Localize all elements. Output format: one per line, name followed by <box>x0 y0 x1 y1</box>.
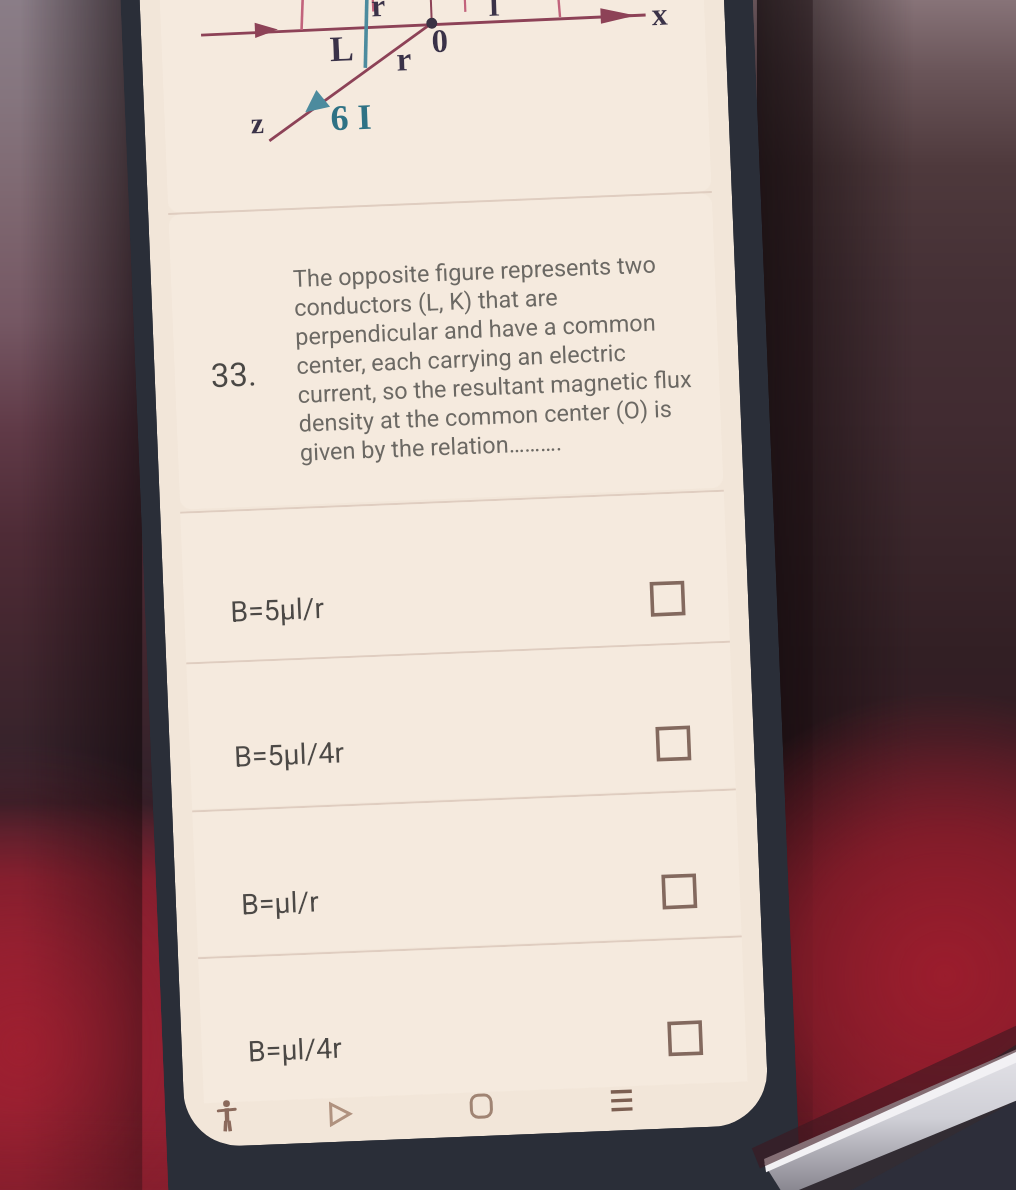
button[interactable]: B=μl/4r <box>198 937 747 1103</box>
staticText: r <box>370 0 387 23</box>
staticText: B=5μl/4r <box>233 736 345 774</box>
button[interactable]: Home <box>457 1082 505 1130</box>
button[interactable]: Back <box>316 1090 363 1138</box>
staticText: B=μl/4r <box>247 1032 342 1068</box>
staticText: L <box>329 28 355 69</box>
button[interactable]: L <box>155 0 712 213</box>
staticText: r <box>395 40 413 79</box>
staticText: The opposite figure represents two condu… <box>292 249 695 466</box>
staticText: I <box>487 0 501 22</box>
button[interactable]: 33. <box>168 193 724 510</box>
staticText: 0 <box>431 23 449 60</box>
button[interactable]: B=μl/r <box>192 791 742 956</box>
button[interactable]: Accessibility <box>202 1091 250 1139</box>
staticText: B=μl/r <box>240 885 320 921</box>
staticText: B=5μl/r <box>230 592 325 629</box>
staticText: x <box>651 0 668 31</box>
button[interactable]: B=5μl/r <box>180 492 730 663</box>
staticText: z <box>250 106 265 139</box>
staticText: 6 I <box>330 97 373 138</box>
button[interactable]: B=5μl/4r <box>186 643 736 809</box>
button[interactable]: Recent apps <box>597 1075 645 1122</box>
staticText: 33. <box>210 354 257 395</box>
